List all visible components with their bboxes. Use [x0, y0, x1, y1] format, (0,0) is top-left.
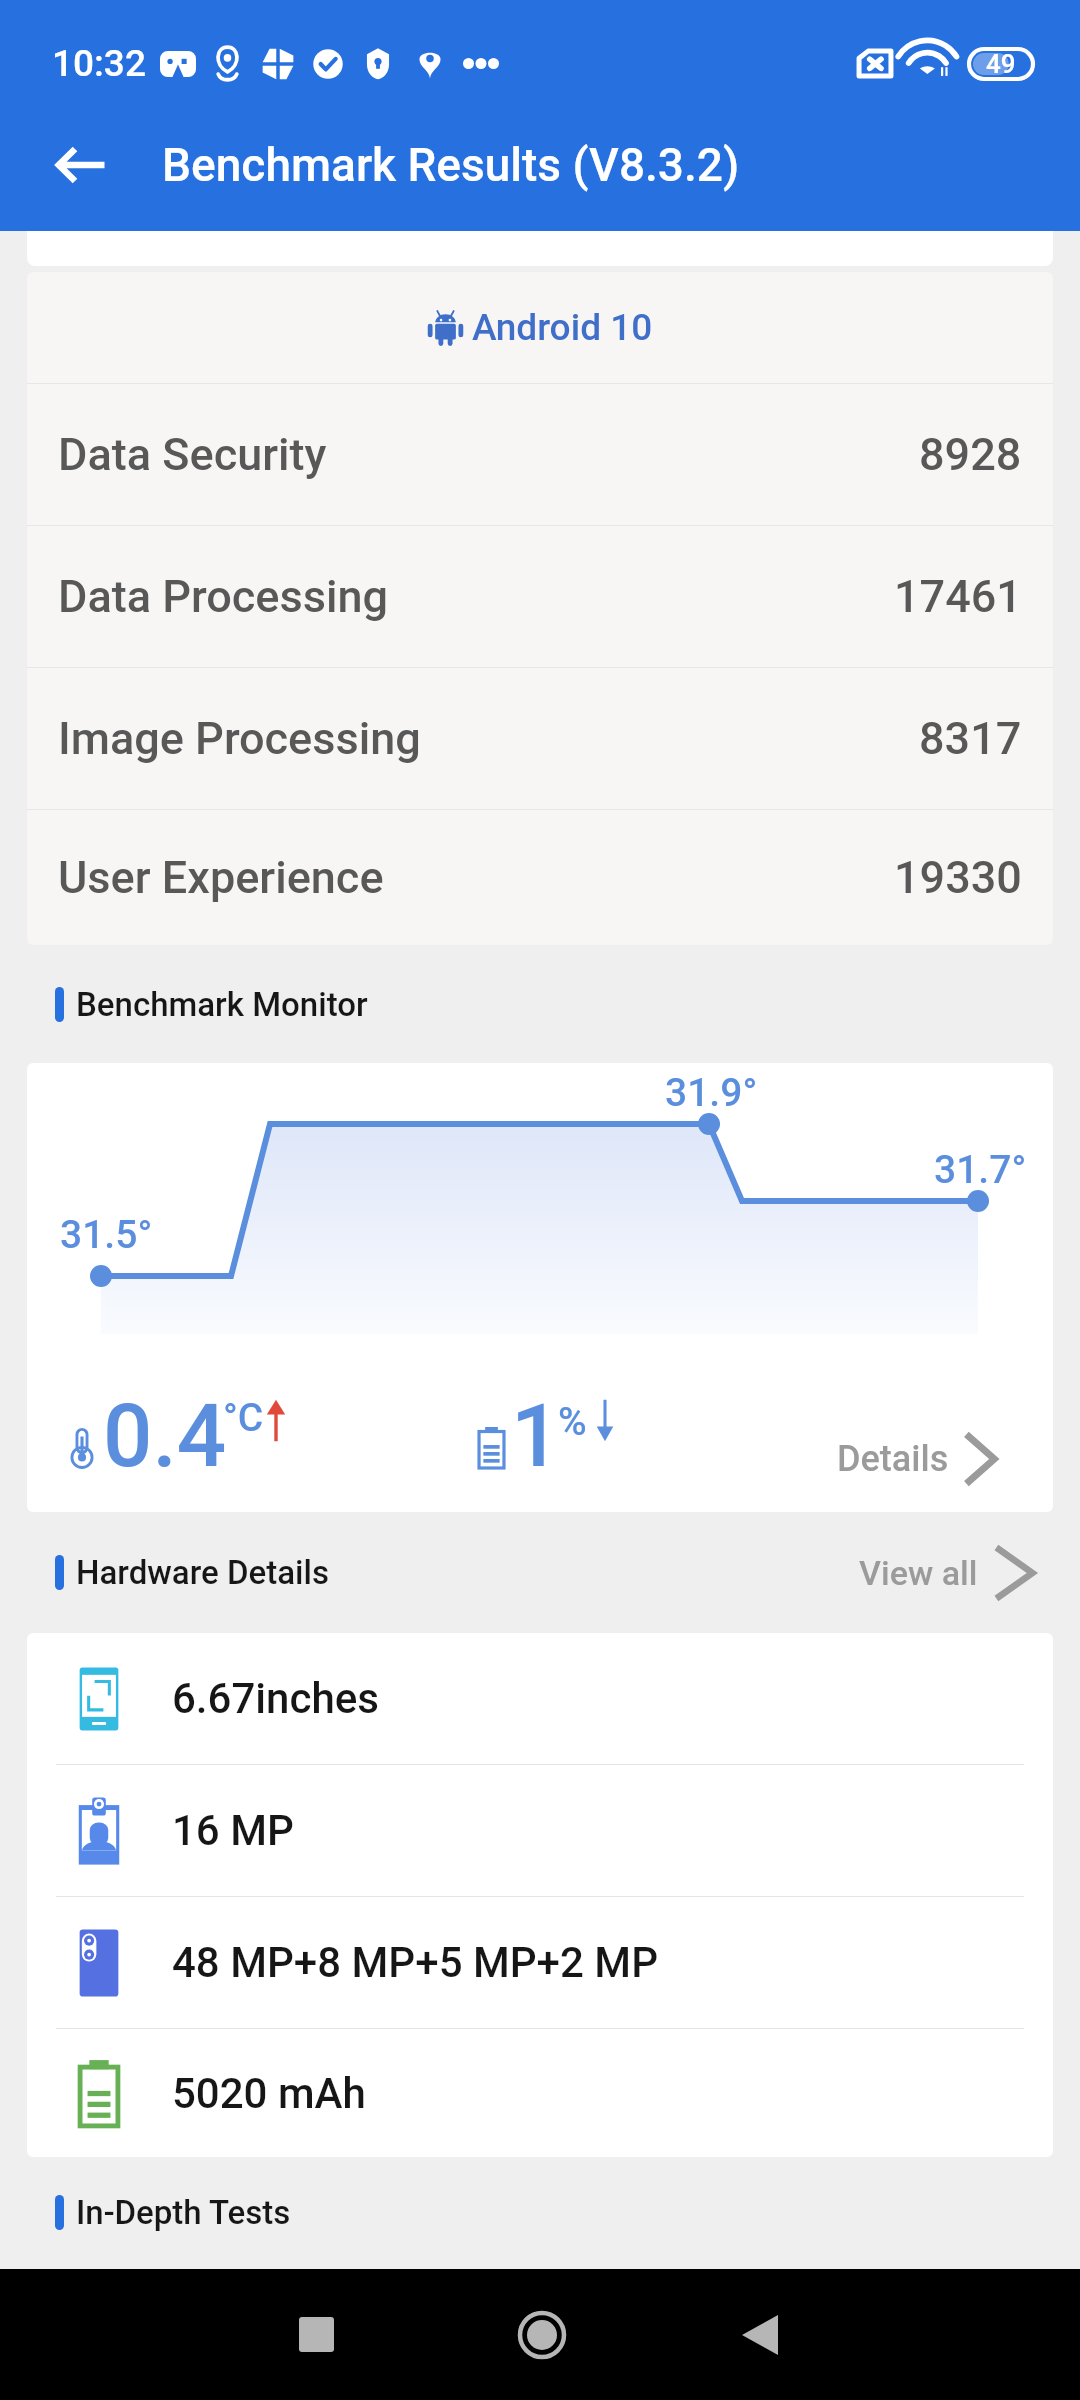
staticText: In-Depth Tests: [76, 2193, 291, 2232]
staticText: 8317: [919, 712, 1022, 765]
staticText: 31.9°: [665, 1070, 758, 1116]
staticText: 31.5°: [60, 1212, 153, 1258]
staticText: 8928: [919, 428, 1022, 481]
staticText: User Experience: [58, 851, 384, 904]
staticText: %: [558, 1399, 587, 1445]
staticText: Details: [837, 1438, 949, 1480]
button[interactable]: 16 MP: [27, 1765, 1053, 1896]
staticText: 31.7°: [934, 1147, 1027, 1193]
staticText: 6.67inches: [172, 1674, 380, 1723]
staticText: 17461: [894, 570, 1022, 623]
staticText: Benchmark Monitor: [76, 985, 368, 1024]
staticText: 49: [986, 49, 1016, 79]
staticText: Benchmark Results (V8.3.2): [162, 138, 740, 192]
staticText: Android 10: [472, 306, 653, 349]
button[interactable]: Details: [837, 1431, 997, 1487]
staticText: 0.4: [103, 1385, 227, 1487]
button[interactable]: 48 MP+8 MP+5 MP+2 MP: [27, 1897, 1053, 2028]
staticText: 10:32: [52, 42, 146, 85]
button[interactable]: Back: [0, 112, 162, 217]
staticText: 1: [511, 1385, 561, 1487]
button[interactable]: Recent apps: [204, 2269, 429, 2400]
button[interactable]: Data Security: [27, 384, 1053, 525]
button[interactable]: User Experience: [27, 810, 1053, 945]
staticText: Data Security: [58, 428, 327, 481]
button[interactable]: 31.5°: [27, 1063, 1053, 1512]
staticText: Data Processing: [58, 570, 389, 623]
staticText: 5020 mAh: [172, 2069, 366, 2118]
staticText: Image Processing: [58, 712, 421, 765]
button[interactable]: Image Processing: [27, 668, 1053, 809]
staticText: 19330: [894, 851, 1022, 904]
button[interactable]: Home: [429, 2269, 654, 2400]
staticText: Hardware Details: [76, 1553, 329, 1592]
button[interactable]: View all: [843, 1544, 1036, 1602]
staticText: °C: [223, 1395, 264, 1441]
staticText: 48 MP+8 MP+5 MP+2 MP: [172, 1938, 658, 1987]
staticText: 16 MP: [172, 1806, 294, 1855]
button[interactable]: Back: [647, 2269, 872, 2400]
button[interactable]: Data Processing: [27, 526, 1053, 667]
staticText: View all: [859, 1553, 978, 1593]
button[interactable]: 5020 mAh: [27, 2029, 1053, 2157]
button[interactable]: 6.67inches: [27, 1633, 1053, 1764]
